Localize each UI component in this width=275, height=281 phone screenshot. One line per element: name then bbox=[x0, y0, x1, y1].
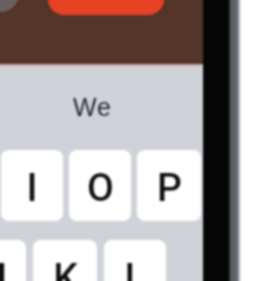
staticText: I bbox=[26, 165, 38, 211]
button[interactable]: J bbox=[0, 240, 26, 281]
button[interactable]: O bbox=[69, 150, 131, 221]
button[interactable]: We bbox=[73, 93, 112, 121]
staticText: P bbox=[157, 165, 182, 211]
button[interactable]: I bbox=[1, 150, 63, 221]
button[interactable]: K bbox=[33, 240, 97, 281]
staticText: J bbox=[0, 255, 7, 281]
staticText: K bbox=[53, 255, 78, 281]
button[interactable]: P bbox=[137, 150, 201, 221]
button[interactable] bbox=[48, 0, 164, 15]
other: Contact avatar bbox=[0, 0, 20, 12]
staticText: L bbox=[124, 255, 146, 281]
staticText: O bbox=[87, 165, 114, 211]
button[interactable]: L bbox=[104, 240, 166, 281]
